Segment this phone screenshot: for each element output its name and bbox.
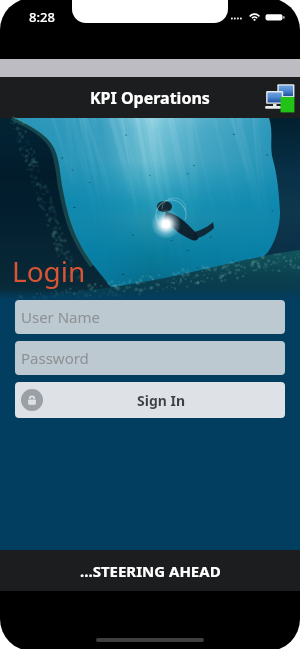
button[interactable]: Remote desktop bbox=[263, 81, 297, 115]
button[interactable]: Sign In bbox=[15, 382, 285, 418]
staticText: Password bbox=[21, 348, 89, 368]
staticText: ...STEERING AHEAD bbox=[80, 561, 221, 581]
button[interactable]: ...STEERING AHEAD bbox=[0, 550, 300, 591]
staticText: Sign In bbox=[137, 391, 186, 410]
staticText: 8:28 bbox=[29, 8, 55, 26]
staticText: KPI Operations bbox=[90, 87, 210, 109]
staticText: Login bbox=[12, 252, 86, 290]
button[interactable]: Password bbox=[15, 341, 285, 375]
button[interactable]: User Name bbox=[15, 300, 285, 334]
staticText: User Name bbox=[21, 307, 101, 327]
